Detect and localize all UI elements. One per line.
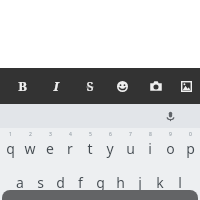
staticText: j bbox=[138, 173, 142, 192]
staticText: p bbox=[186, 139, 195, 158]
button[interactable]: h bbox=[110, 166, 130, 192]
button[interactable]: Bold bbox=[8, 68, 36, 104]
staticText: e bbox=[46, 139, 54, 158]
button[interactable]: Italic bbox=[42, 68, 70, 104]
staticText: w bbox=[24, 139, 36, 158]
button[interactable]: 4 bbox=[60, 131, 80, 161]
staticText: 2 bbox=[29, 131, 32, 138]
button[interactable]: Voice input bbox=[161, 107, 179, 125]
staticText: t bbox=[87, 139, 93, 158]
staticText: f bbox=[78, 173, 83, 192]
staticText: u bbox=[126, 139, 135, 158]
button[interactable]: k bbox=[150, 166, 170, 192]
staticText: 4 bbox=[69, 131, 72, 138]
staticText: k bbox=[156, 173, 164, 192]
button[interactable]: a bbox=[10, 166, 30, 192]
staticText: q bbox=[6, 139, 15, 158]
button[interactable]: f bbox=[70, 166, 90, 192]
staticText: 6 bbox=[109, 131, 112, 138]
button[interactable]: 5 bbox=[80, 131, 100, 161]
staticText: 5 bbox=[89, 131, 92, 138]
button[interactable]: 0 bbox=[180, 131, 200, 161]
button[interactable]: 1 bbox=[0, 131, 20, 161]
staticText: h bbox=[116, 173, 125, 192]
staticText: o bbox=[166, 139, 175, 158]
button[interactable]: g bbox=[90, 166, 110, 192]
staticText: 7 bbox=[129, 131, 132, 138]
staticText: B bbox=[18, 77, 27, 95]
button[interactable]: d bbox=[50, 166, 70, 192]
staticText: 1 bbox=[9, 131, 12, 138]
staticText: I bbox=[53, 77, 59, 95]
staticText: g bbox=[96, 173, 105, 192]
button[interactable]: Insert image bbox=[172, 68, 200, 104]
staticText: S bbox=[86, 77, 94, 95]
button[interactable]: Take photo bbox=[142, 68, 170, 104]
button[interactable]: 2 bbox=[20, 131, 40, 161]
button[interactable]: s bbox=[30, 166, 50, 192]
button[interactable]: Insert emoji bbox=[108, 68, 136, 104]
button[interactable]: j bbox=[130, 166, 150, 192]
button[interactable]: 6 bbox=[100, 131, 120, 161]
button[interactable]: Strikethrough bbox=[76, 68, 104, 104]
button[interactable]: 7 bbox=[120, 131, 140, 161]
staticText: i bbox=[148, 139, 152, 158]
staticText: s bbox=[37, 173, 44, 192]
staticText: l bbox=[178, 173, 182, 192]
button[interactable]: 9 bbox=[160, 131, 180, 161]
staticText: 3 bbox=[49, 131, 52, 138]
button[interactable]: 8 bbox=[140, 131, 160, 161]
staticText: 0 bbox=[189, 131, 192, 138]
staticText: r bbox=[67, 139, 73, 158]
staticText: a bbox=[16, 173, 24, 192]
button[interactable]: 3 bbox=[40, 131, 60, 161]
button[interactable]: l bbox=[170, 166, 190, 192]
staticText: 9 bbox=[169, 131, 172, 138]
staticText: y bbox=[106, 139, 114, 158]
staticText: d bbox=[56, 173, 65, 192]
staticText: 8 bbox=[149, 131, 152, 138]
